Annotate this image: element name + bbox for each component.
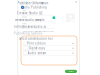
staticText: Contact [21, 23, 26, 25]
staticText: Print edition [27, 42, 46, 45]
button[interactable]: Close [75, 0, 78, 4]
button[interactable]: Digital copy [0, 0, 100, 75]
staticText: Select a distribution tier [19, 37, 53, 40]
staticText: hello@creativestudio.co [13, 25, 46, 28]
staticText: Website [21, 16, 26, 18]
button[interactable]: Audio stream [0, 0, 100, 75]
staticText: Studio Publishing [21, 6, 47, 9]
staticText: Creative Studio LLC [17, 11, 43, 15]
staticText: Name [22, 9, 26, 11]
staticText: Publishing options [14, 32, 42, 35]
button[interactable]: Continue [65, 70, 77, 73]
staticText: creativestudio.example [15, 18, 45, 22]
staticText: Icon [71, 20, 74, 22]
staticText: Add a short description of the publisher… [22, 30, 53, 32]
button[interactable]: Print edition [0, 0, 100, 75]
staticText: Audio stream [27, 51, 45, 55]
staticText: Publisher Information [17, 1, 48, 5]
staticText: Continue [68, 70, 74, 72]
staticText: Digital copy [28, 46, 44, 50]
staticText: Cover [66, 20, 71, 22]
button[interactable]: Upload cover image [66, 13, 75, 19]
